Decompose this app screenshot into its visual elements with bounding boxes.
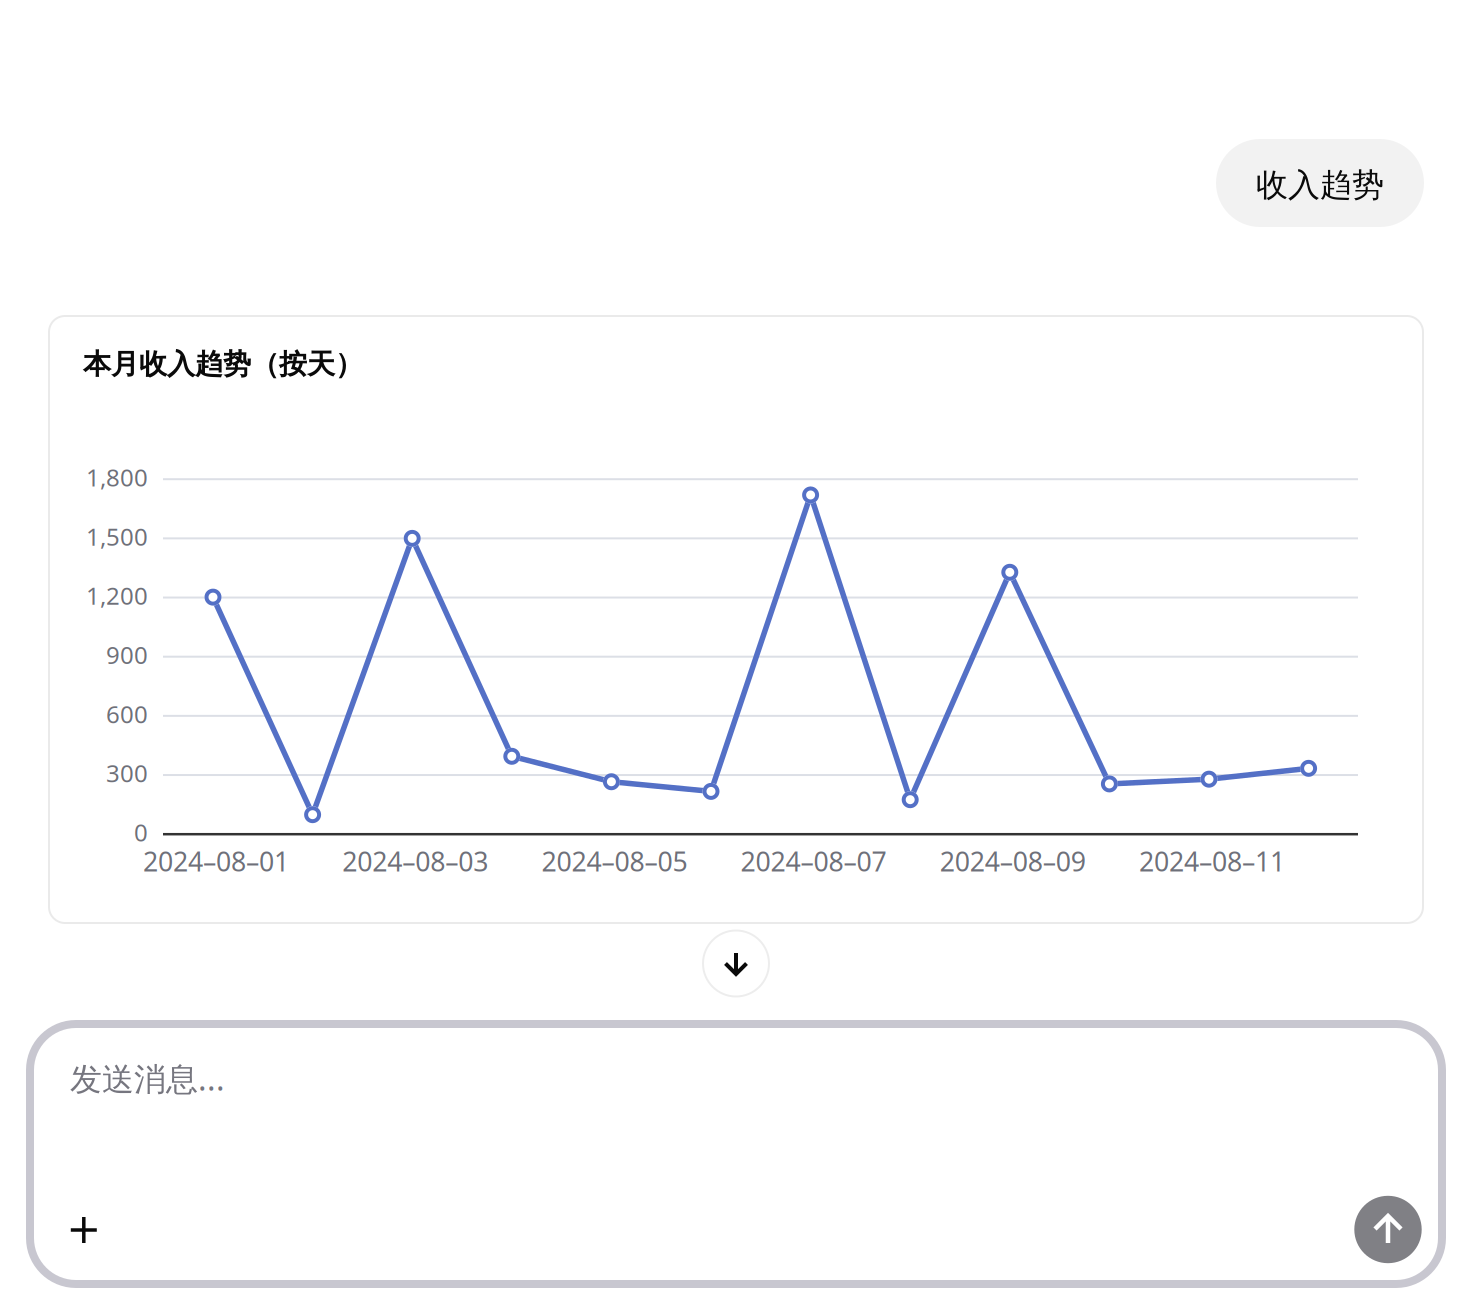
staticText: 0 (134, 816, 148, 848)
staticText: 600 (106, 698, 148, 730)
staticText: 2024–08–07 (741, 843, 887, 879)
staticText: 2024–08–11 (1139, 843, 1285, 879)
staticText: 2024–08–03 (342, 843, 488, 879)
button[interactable]: Scroll to bottom (698, 925, 774, 1001)
staticText: 300 (106, 757, 148, 789)
staticText: 2024–08–05 (541, 843, 687, 879)
staticText: 1,800 (86, 461, 148, 493)
staticText: 2024–08–09 (940, 843, 1086, 879)
staticText: 1,200 (86, 580, 148, 611)
button[interactable]: Add attachment (49, 1195, 119, 1265)
staticText: 2024–08–01 (143, 843, 289, 879)
staticText: 发送消息... (70, 1057, 225, 1099)
staticText: 收入趋势 (1256, 165, 1384, 205)
button[interactable]: 收入趋势 (1216, 139, 1424, 227)
staticText: 900 (106, 639, 148, 671)
button[interactable]: Send (1348, 1189, 1428, 1269)
staticText: 1,500 (86, 520, 148, 552)
staticText: 本月收入趋势（按天） (83, 347, 363, 381)
